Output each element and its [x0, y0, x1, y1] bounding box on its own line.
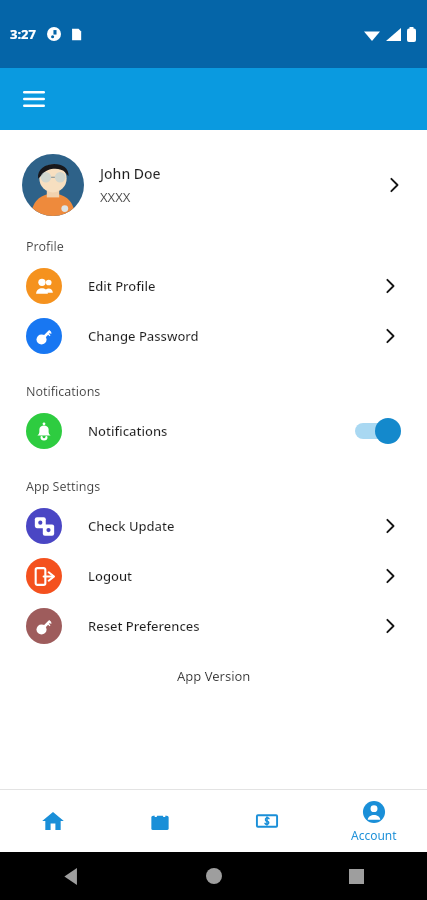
staticText: Change Password [88, 327, 199, 345]
button[interactable]: Account [320, 790, 427, 852]
button[interactable]: Notifications toggle, on [355, 418, 401, 444]
staticText: Check Update [88, 517, 175, 535]
button[interactable]: Check Update [0, 501, 427, 551]
button[interactable]: Open navigation menu [12, 77, 56, 121]
staticText: Reset Preferences [88, 617, 200, 635]
button[interactable]: Edit Profile [0, 261, 427, 311]
button[interactable]: John Doe [0, 146, 427, 224]
staticText: Notifications [26, 383, 101, 400]
button[interactable]: Reset Preferences [0, 601, 427, 651]
button[interactable]: Home [0, 790, 106, 852]
staticText: Account [351, 827, 397, 843]
staticText: Edit Profile [88, 277, 156, 295]
button[interactable]: Change Password [0, 311, 427, 361]
staticText: XXXX [100, 188, 131, 206]
staticText: App Settings [26, 478, 101, 495]
staticText: Profile [26, 238, 64, 255]
staticText: Notifications [88, 422, 168, 440]
staticText: App Version [177, 667, 251, 685]
staticText: 3:27 [10, 25, 36, 43]
staticText: John Doe [100, 164, 161, 183]
button[interactable]: Notifications [0, 406, 427, 456]
staticText: Logout [88, 567, 133, 585]
button[interactable]: Payments [213, 790, 320, 852]
button[interactable]: Shop [106, 790, 213, 852]
button[interactable]: Logout [0, 551, 427, 601]
